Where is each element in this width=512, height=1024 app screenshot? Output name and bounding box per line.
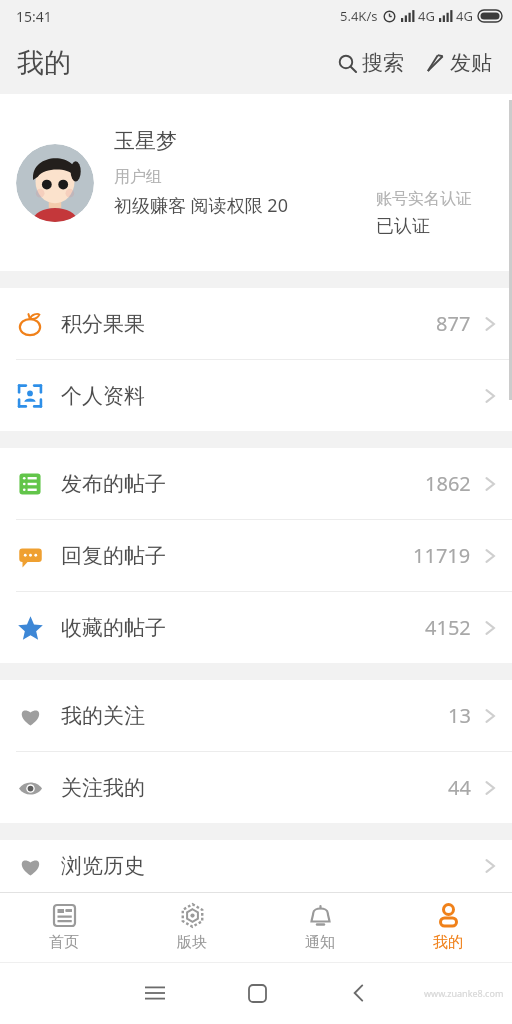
staticText: 877	[436, 310, 471, 337]
staticText: 收藏的帖子	[61, 615, 166, 641]
staticText: 4152	[425, 614, 471, 641]
staticText: 搜索	[362, 50, 404, 76]
button[interactable]: 玉星梦	[0, 94, 512, 271]
button[interactable]: Back	[308, 962, 410, 1024]
staticText: 用户组	[114, 167, 162, 187]
staticText: 我的	[17, 46, 71, 80]
staticText: 版块	[177, 933, 207, 952]
button[interactable]: Home	[206, 962, 308, 1024]
staticText: 4G	[418, 7, 435, 25]
staticText: 我的关注	[61, 703, 145, 729]
staticText: 回复的帖子	[61, 543, 166, 569]
button[interactable]: 发布的帖子	[0, 448, 512, 519]
staticText: 首页	[49, 933, 79, 952]
button[interactable]: 通知	[256, 893, 384, 962]
button[interactable]: 我的	[384, 893, 512, 962]
staticText: 发布的帖子	[61, 471, 166, 497]
staticText: 4G	[456, 7, 473, 25]
button[interactable]: 搜索	[334, 44, 408, 82]
button[interactable]: 收藏的帖子	[0, 592, 512, 663]
staticText: www.zuanke8.com	[424, 987, 504, 999]
button[interactable]: 首页	[0, 893, 128, 962]
staticText: 发贴	[450, 50, 492, 76]
staticText: 通知	[305, 933, 335, 952]
staticText: 已认证	[376, 215, 430, 238]
staticText: 积分果果	[61, 311, 145, 337]
button[interactable]: 发贴	[422, 44, 496, 82]
staticText: 5.4K/s	[340, 7, 378, 25]
staticText: 15:41	[16, 7, 52, 26]
staticText: 初级赚客 阅读权限 20	[114, 193, 288, 218]
staticText: 账号实名认证	[376, 189, 472, 209]
staticText: 11719	[413, 542, 471, 569]
staticText: 玉星梦	[114, 128, 177, 154]
staticText: 44	[448, 774, 471, 801]
button[interactable]: 浏览历史	[0, 840, 512, 892]
staticText: 浏览历史	[61, 853, 145, 879]
button[interactable]: Menu	[103, 962, 206, 1024]
button[interactable]: 版块	[128, 893, 256, 962]
staticText: 个人资料	[61, 383, 145, 409]
staticText: 我的	[433, 933, 463, 952]
staticText: 关注我的	[61, 775, 145, 801]
staticText: 13	[448, 702, 471, 729]
button[interactable]: 关注我的	[0, 752, 512, 823]
button[interactable]: 回复的帖子	[0, 520, 512, 591]
button[interactable]: 积分果果	[0, 288, 512, 359]
button[interactable]: 个人资料	[0, 360, 512, 431]
button[interactable]: 我的关注	[0, 680, 512, 751]
staticText: 1862	[425, 470, 471, 497]
